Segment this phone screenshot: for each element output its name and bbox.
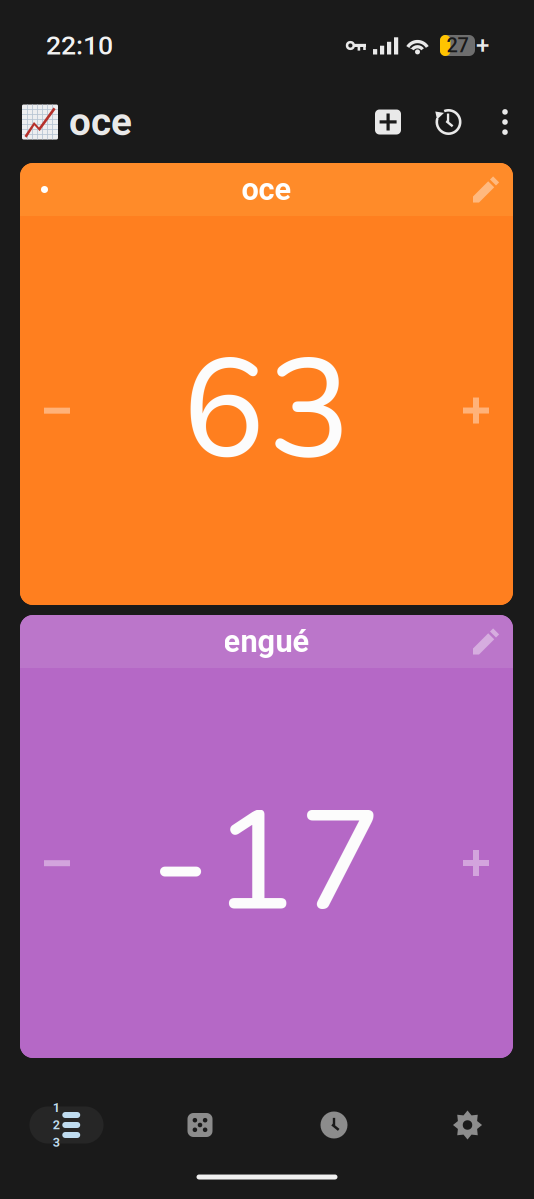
button[interactable]: Counters bbox=[0, 1103, 133, 1147]
button[interactable]: Decrease oce bbox=[20, 352, 106, 468]
button[interactable]: Add counter bbox=[353, 99, 402, 144]
button[interactable]: Settings bbox=[401, 1103, 534, 1147]
staticText: oce bbox=[241, 171, 291, 207]
button[interactable]: History bbox=[402, 98, 469, 145]
staticText: -17 bbox=[151, 768, 382, 957]
staticText: 27 bbox=[446, 34, 468, 57]
staticText: oce bbox=[69, 99, 132, 145]
button[interactable]: Increase engué bbox=[427, 805, 513, 920]
button[interactable]: Timer bbox=[267, 1103, 401, 1147]
button[interactable]: Decrease engué bbox=[20, 805, 106, 921]
staticText: 2 bbox=[53, 1118, 60, 1132]
button[interactable]: Rename oce bbox=[461, 163, 513, 216]
button[interactable]: Dice bbox=[133, 1103, 267, 1147]
staticText: engué bbox=[223, 623, 309, 659]
button[interactable]: Increase oce bbox=[427, 353, 513, 468]
staticText: 63 bbox=[182, 316, 351, 505]
staticText: + bbox=[476, 31, 489, 59]
button[interactable]: Rename engué bbox=[461, 615, 513, 668]
button[interactable]: More options bbox=[469, 99, 530, 145]
staticText: 22:10 bbox=[46, 30, 113, 61]
staticText: 3 bbox=[53, 1135, 60, 1150]
button[interactable]: oce bbox=[22, 99, 132, 145]
staticText: 1 bbox=[53, 1100, 60, 1115]
